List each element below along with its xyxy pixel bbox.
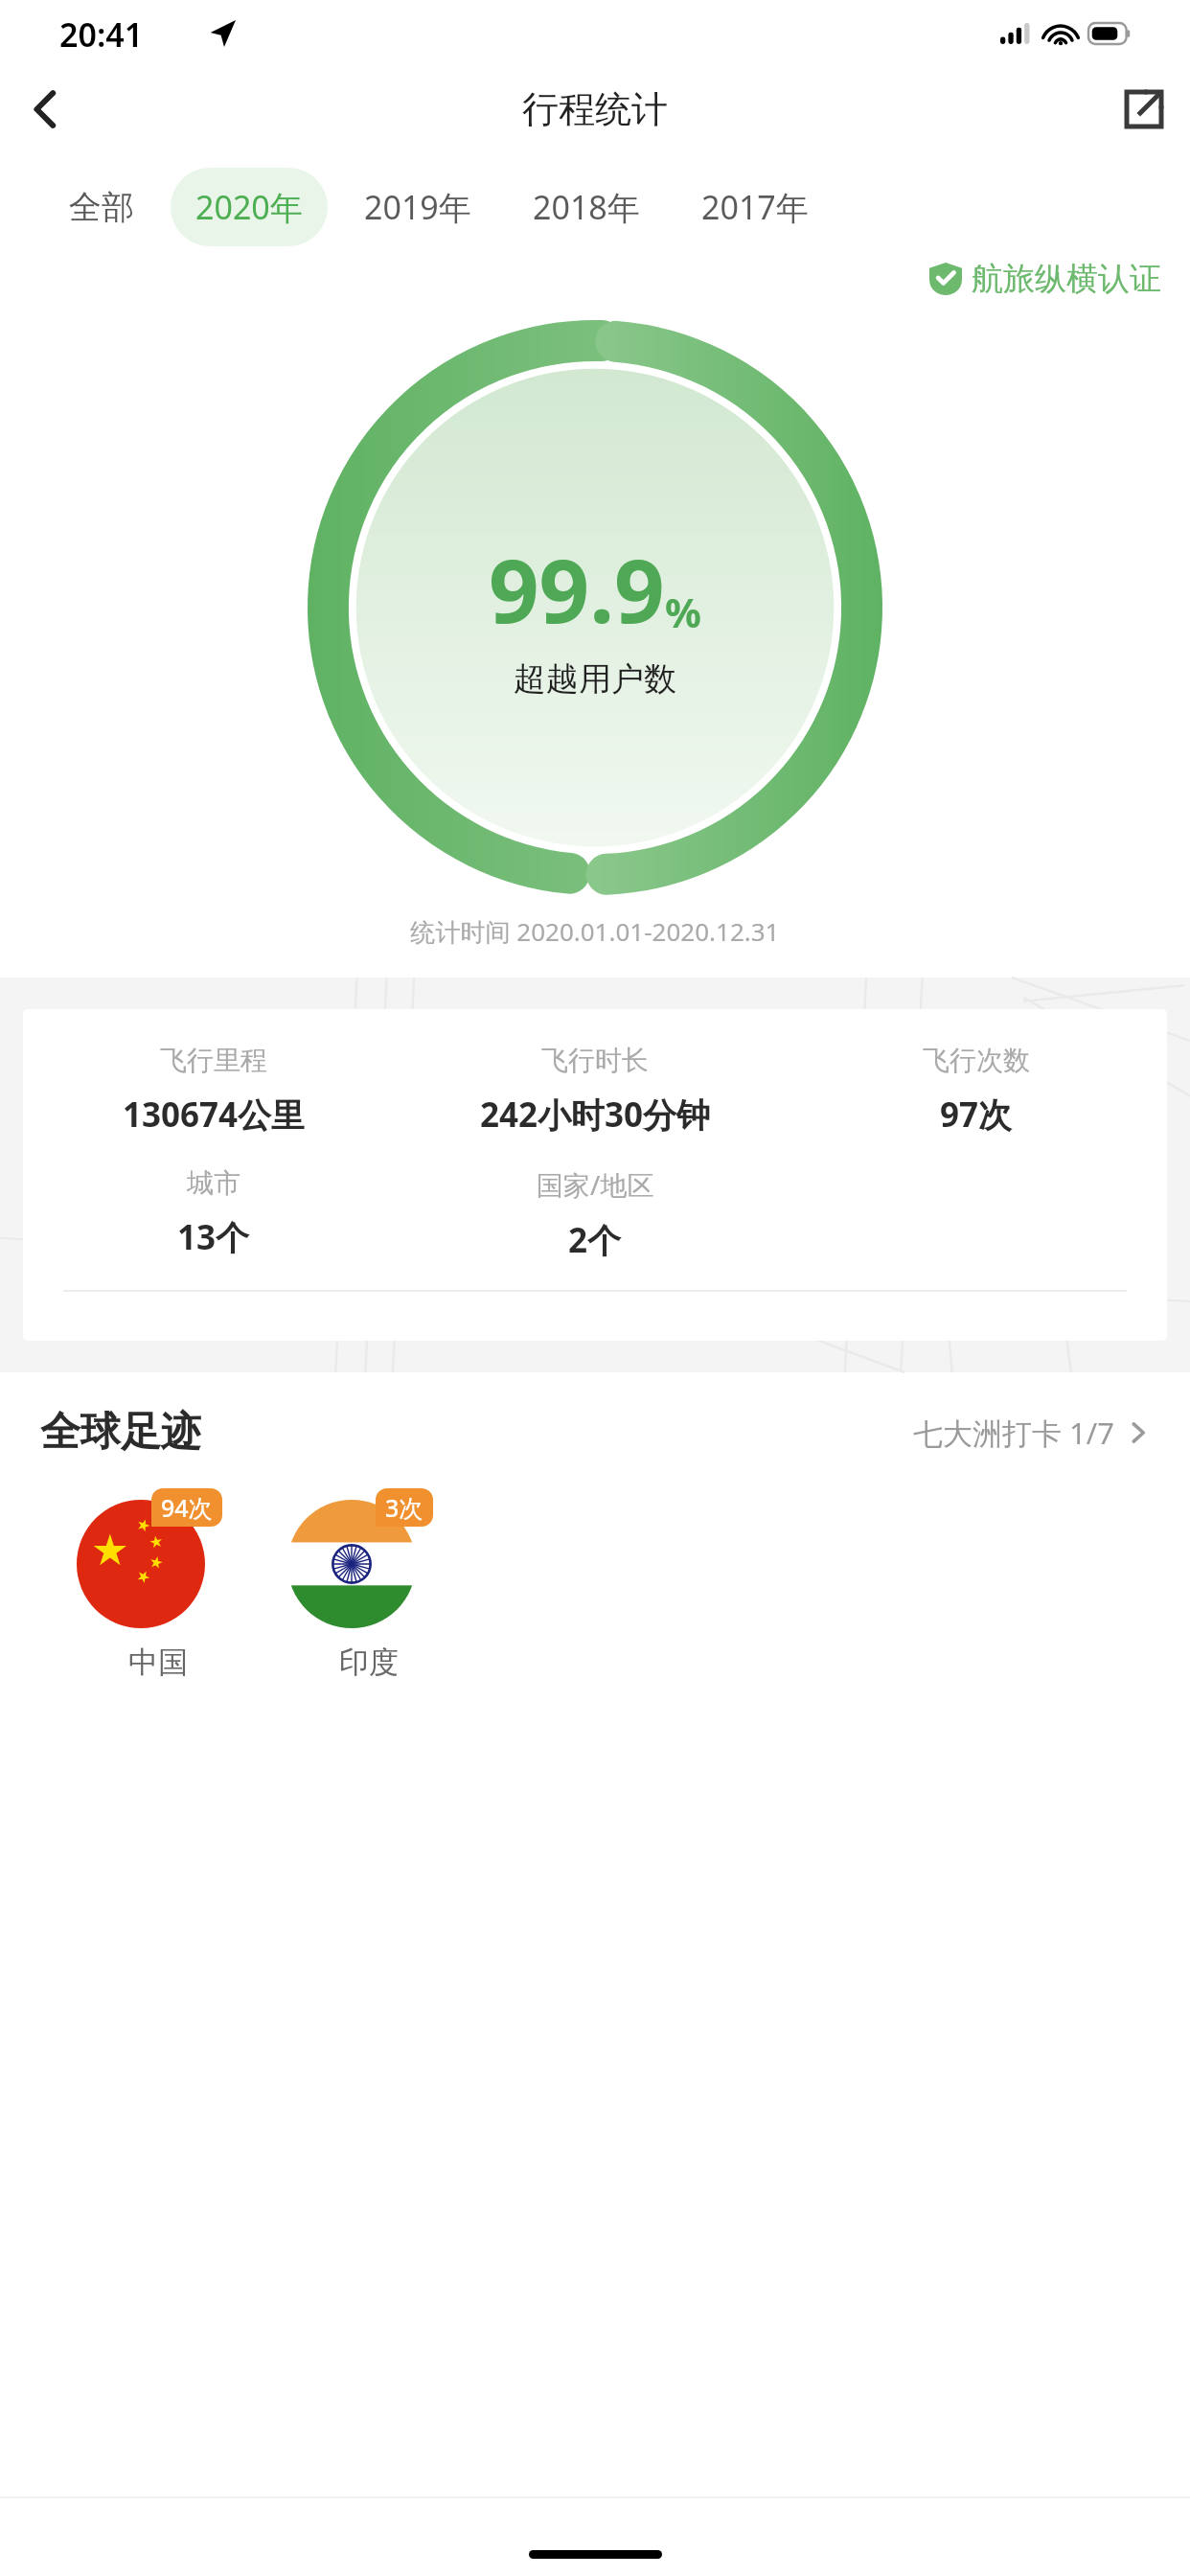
staticText: 超越用户数 — [514, 658, 676, 700]
staticText: 2个 — [568, 1217, 622, 1263]
staticText: 航旅纵横认证 — [972, 259, 1161, 299]
button[interactable]: 94次 — [77, 1488, 240, 1681]
button[interactable]: 2017年 — [676, 168, 834, 246]
button[interactable]: 2019年 — [339, 168, 496, 246]
staticText: 中国 — [128, 1644, 188, 1681]
staticText: 97次 — [940, 1092, 1013, 1138]
button[interactable]: 3次 — [287, 1488, 450, 1681]
staticText: 13个 — [177, 1214, 250, 1260]
button[interactable]: Back — [0, 63, 92, 155]
staticText: 3次 — [385, 1491, 423, 1524]
staticText: 飞行里程 — [160, 1044, 267, 1077]
staticText: 城市 — [187, 1166, 240, 1200]
staticText: 飞行时长 — [541, 1044, 649, 1077]
staticText: 130674公里 — [123, 1092, 306, 1138]
button[interactable]: 全部 — [44, 170, 159, 245]
staticText: 94次 — [161, 1491, 213, 1524]
button[interactable]: 2018年 — [508, 168, 665, 246]
staticText: 2018年 — [533, 185, 640, 229]
staticText: 2019年 — [364, 185, 471, 229]
button[interactable]: Share — [1098, 63, 1190, 155]
staticText: 全部 — [69, 187, 134, 228]
staticText: 2020年 — [195, 185, 303, 229]
staticText: % — [665, 585, 701, 639]
staticText: 242小时30分钟 — [480, 1092, 711, 1138]
staticText: 99.9 — [489, 529, 665, 649]
staticText: 印度 — [339, 1644, 399, 1681]
staticText: 20:41 — [59, 12, 144, 57]
button[interactable]: 2020年 — [171, 168, 328, 246]
staticText: 飞行次数 — [923, 1044, 1030, 1077]
staticText: 全球足迹 — [40, 1407, 201, 1458]
staticText: 统计时间 2020.01.01-2020.12.31 — [0, 914, 1190, 949]
button[interactable]: 七大洲打卡 1/7 — [913, 1413, 1150, 1453]
staticText: 2017年 — [701, 185, 809, 229]
staticText: 行程统计 — [522, 86, 668, 132]
staticText: 七大洲打卡 1/7 — [913, 1413, 1115, 1453]
staticText: 国家/地区 — [537, 1166, 654, 1203]
